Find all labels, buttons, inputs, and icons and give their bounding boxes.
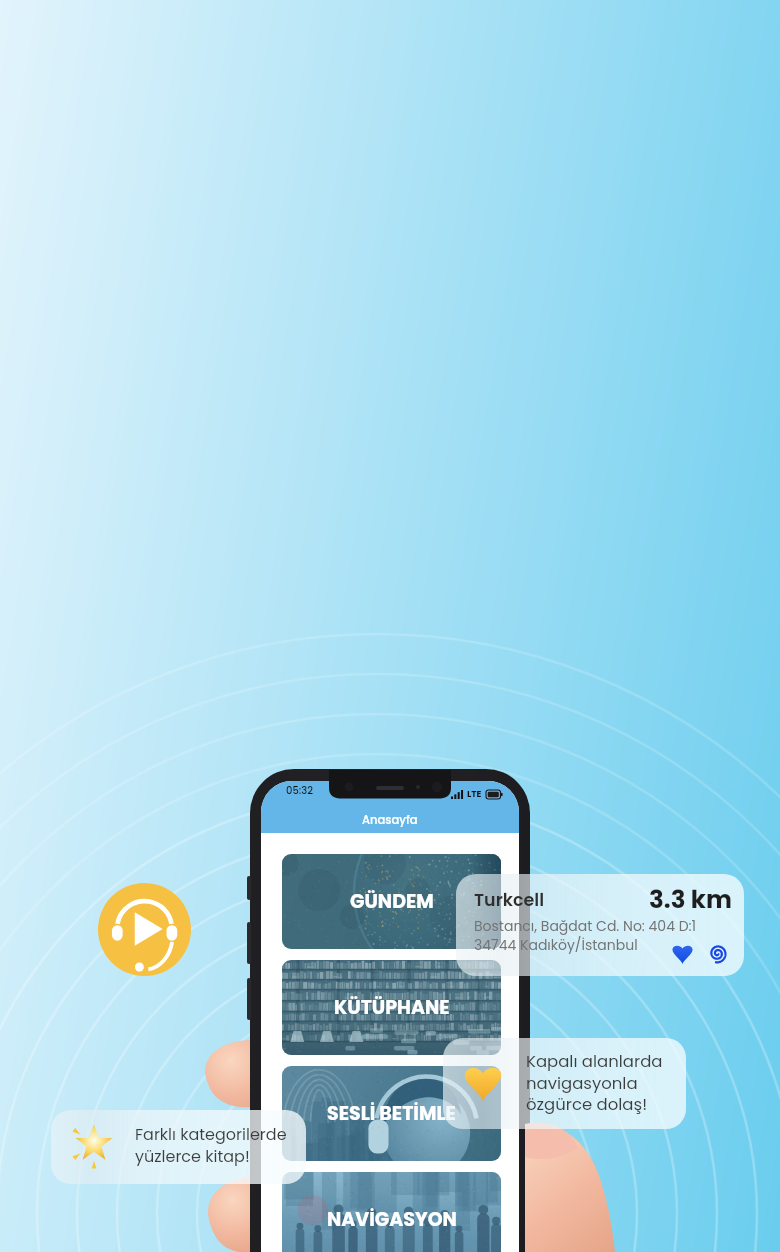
staticText: GÜNDEM	[350, 888, 434, 915]
staticText: Farklı kategorilerde yüzlerce kitap!	[135, 1123, 287, 1167]
staticText: Bostancı, Bağdat Cd. No: 404 D:1 34744 K…	[474, 916, 697, 955]
staticText: 05:32	[286, 783, 313, 797]
staticText: 3.3 km	[649, 882, 732, 916]
staticText: LTE	[467, 788, 482, 801]
staticText: Anasayfa	[362, 812, 418, 828]
staticText: SESLİ BETİMLE	[327, 1100, 456, 1127]
button[interactable]: KÜTÜPHANE	[282, 960, 501, 1055]
button[interactable]: Sesli betimleme	[98, 883, 191, 976]
button[interactable]: Turkcell	[456, 874, 744, 976]
staticText: KÜTÜPHANE	[334, 994, 450, 1021]
staticText: Kapalı alanlarda navigasyonla özgürce do…	[526, 1050, 663, 1116]
button[interactable]: GÜNDEM	[282, 854, 501, 949]
button[interactable]: NAVİGASYON	[282, 1172, 501, 1252]
button[interactable]: SESLİ BETİMLE	[282, 1066, 501, 1161]
staticText: Turkcell	[474, 888, 545, 913]
button[interactable]: Farklı kategorilerde yüzlerce kitap!	[51, 1110, 306, 1184]
staticText: NAVİGASYON	[327, 1206, 457, 1233]
button[interactable]: Kapalı alanlarda navigasyonla özgürce do…	[443, 1038, 686, 1129]
